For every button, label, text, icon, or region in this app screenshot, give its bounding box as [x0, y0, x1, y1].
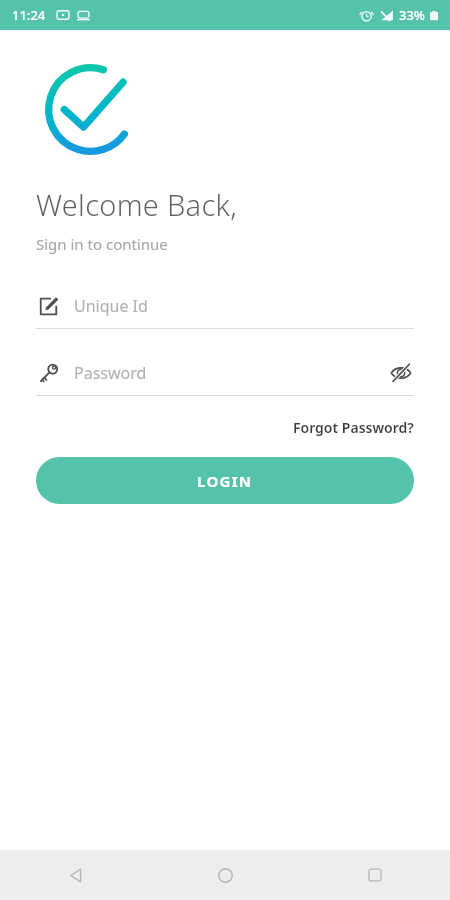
button[interactable]: Home — [150, 850, 300, 900]
button[interactable]: LOGIN — [36, 457, 414, 504]
staticText: Password — [74, 362, 147, 384]
button[interactable]: Back — [0, 850, 150, 900]
button[interactable]: Forgot Password? — [291, 414, 416, 441]
button[interactable]: Edit — [36, 288, 414, 329]
other: Password — [36, 361, 60, 385]
staticText: LOGIN — [197, 471, 253, 491]
button[interactable]: Show password — [388, 360, 414, 386]
other: Edit — [36, 294, 60, 318]
staticText: Sign in to continue — [36, 234, 168, 254]
staticText: 33% — [399, 6, 425, 24]
other: App logo — [37, 56, 144, 163]
staticText: Unique Id — [74, 295, 148, 317]
button[interactable]: Password — [36, 355, 414, 396]
staticText: Welcome Back, — [36, 185, 237, 224]
staticText: Forgot Password? — [293, 418, 414, 437]
button[interactable]: Recent apps — [300, 850, 450, 900]
staticText: 11:24 — [12, 6, 46, 24]
